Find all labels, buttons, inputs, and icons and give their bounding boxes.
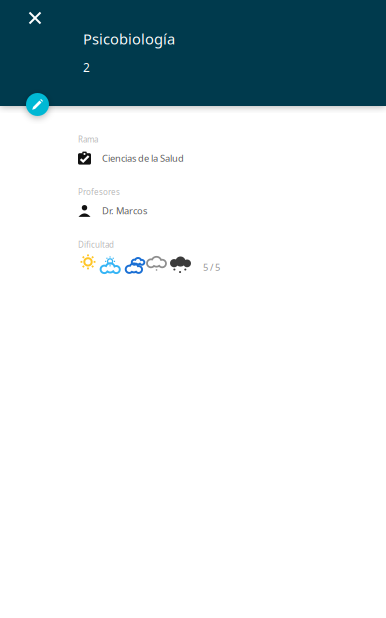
staticText: Ciencias de la Salud <box>102 152 184 164</box>
staticText: Dr. Marcos <box>102 205 147 217</box>
button[interactable]: Edit <box>26 93 49 116</box>
staticText: Profesores <box>78 187 120 197</box>
staticText: 5 / 5 <box>203 261 220 273</box>
staticText: Rama <box>78 134 98 145</box>
staticText: Dificultad <box>78 239 114 250</box>
staticText: 2 <box>83 59 90 75</box>
staticText: Psicobiología <box>83 29 175 48</box>
button[interactable]: Close <box>20 3 50 33</box>
